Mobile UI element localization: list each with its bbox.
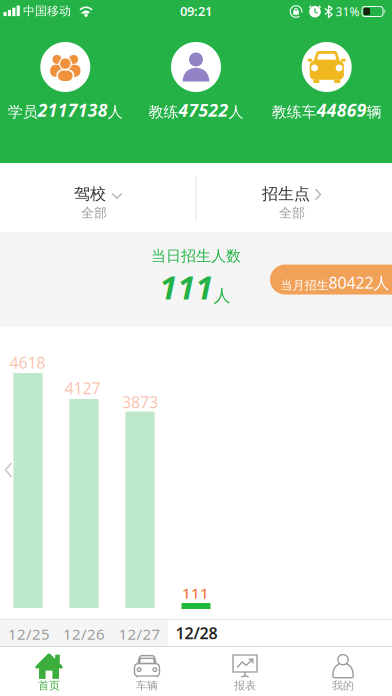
staticText: 111人	[159, 266, 230, 308]
staticText: 报表	[234, 679, 256, 692]
button[interactable]: 首页	[0, 647, 98, 696]
staticText: 首页	[38, 679, 60, 692]
button[interactable]: 教练47522人	[116, 21, 276, 123]
button[interactable]: 当月招生80422人	[270, 264, 392, 294]
button[interactable]: 驾校	[12, 163, 184, 225]
staticText: 招生点	[262, 184, 310, 204]
staticText: 全部	[279, 205, 305, 221]
staticText: 当月招生80422人	[280, 272, 389, 293]
button[interactable]: 12/25	[1, 621, 57, 647]
staticText: 教练车44869辆	[272, 98, 382, 122]
staticText: 09:21	[180, 2, 212, 20]
staticText: 12/28	[175, 622, 217, 644]
staticText: 4618	[9, 352, 45, 373]
staticText: 学员2117138人	[8, 98, 123, 122]
button[interactable]: 招生点	[210, 163, 382, 225]
button[interactable]: 12/26	[56, 621, 112, 647]
staticText: 12/25	[8, 624, 50, 644]
staticText: 当日招生人数	[151, 247, 241, 265]
button[interactable]: 12/27	[111, 621, 167, 647]
staticText: 4127	[64, 377, 100, 399]
button[interactable]: 报表	[196, 647, 294, 696]
staticText: 31%	[335, 3, 359, 20]
button[interactable]: 上一页	[0, 456, 17, 484]
staticText: 驾校	[74, 184, 106, 204]
staticText: 3873	[122, 391, 158, 413]
button[interactable]: 教练车44869辆	[247, 21, 392, 123]
button[interactable]: 12/28	[168, 620, 224, 646]
staticText: 12/27	[118, 624, 160, 644]
staticText: 教练47522人	[148, 98, 243, 122]
button[interactable]: 我的	[294, 647, 392, 696]
staticText: 12/26	[63, 624, 105, 644]
staticText: 车辆	[136, 679, 158, 692]
staticText: 中国移动	[23, 3, 71, 18]
staticText: 全部	[81, 205, 107, 221]
staticText: 我的	[332, 679, 354, 692]
staticText: 111	[182, 583, 209, 603]
button[interactable]: 学员2117138人	[0, 21, 145, 123]
button[interactable]: 车辆	[98, 647, 196, 696]
